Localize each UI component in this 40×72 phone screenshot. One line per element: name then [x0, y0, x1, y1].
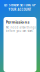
- staticText: LET'S FINISH SETTING UP: [4, 3, 36, 7]
- staticText: YOUR ACCOUNT: [8, 8, 31, 11]
- staticText: Permissions: [5, 19, 29, 24]
- staticText: We need a few things before you can star…: [5, 26, 35, 33]
